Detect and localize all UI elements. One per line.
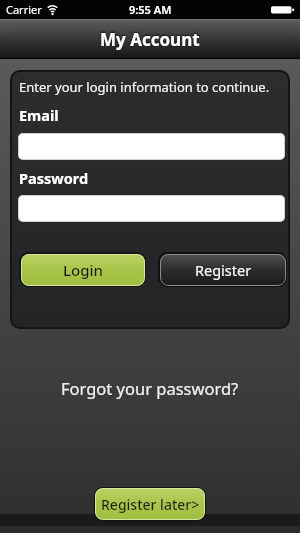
button[interactable]: Forgot your password? bbox=[57, 373, 243, 403]
staticText: My Account bbox=[100, 28, 200, 51]
staticText: Carrier bbox=[6, 2, 42, 17]
button[interactable]: Register later> bbox=[95, 488, 205, 520]
staticText: Login bbox=[63, 260, 103, 280]
staticText: Email bbox=[19, 105, 59, 125]
staticText: Register later> bbox=[101, 495, 200, 514]
button[interactable]: Register bbox=[160, 254, 286, 286]
staticText: 9:55 AM bbox=[129, 2, 172, 17]
staticText: Enter your login information to continue… bbox=[19, 78, 270, 96]
staticText: Register bbox=[195, 260, 252, 280]
staticText: Forgot your password? bbox=[61, 377, 239, 399]
button[interactable] bbox=[18, 133, 285, 160]
staticText: Password bbox=[19, 168, 89, 188]
button[interactable]: Login bbox=[21, 254, 145, 286]
button[interactable] bbox=[18, 195, 285, 222]
